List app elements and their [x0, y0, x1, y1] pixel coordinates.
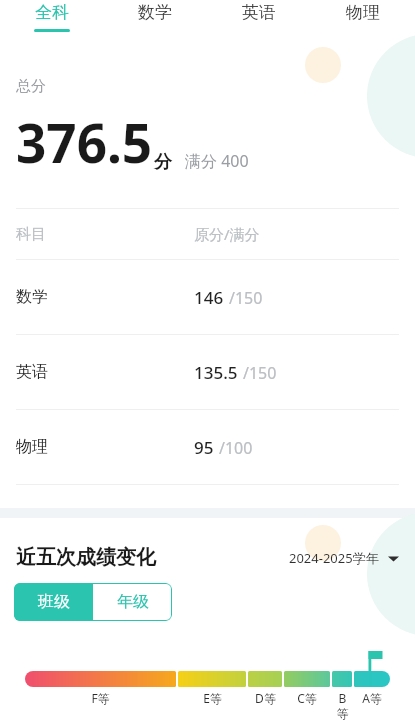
staticText: A等 — [362, 690, 382, 706]
button[interactable]: 物理 — [16, 410, 399, 484]
button[interactable]: 英语 — [16, 335, 399, 409]
button[interactable]: 班级 — [14, 583, 93, 621]
staticText: /150 — [243, 362, 277, 384]
staticText: C等 — [297, 690, 317, 706]
staticText: 数学 — [16, 287, 48, 307]
staticText: F等 — [91, 690, 110, 706]
staticText: 班级 — [38, 592, 70, 612]
staticText: 科目 — [16, 225, 46, 244]
button[interactable]: 选择学年 — [289, 549, 399, 567]
staticText: /100 — [219, 437, 253, 459]
staticText: E等 — [203, 690, 222, 706]
staticText: 近五次成绩变化 — [16, 545, 156, 570]
button[interactable]: 物理 — [311, 0, 415, 40]
staticText: 135.5 — [194, 361, 238, 384]
button[interactable]: 年级 — [93, 583, 172, 621]
staticText: 2024-2025学年 — [289, 549, 379, 567]
staticText: 物理 — [346, 2, 380, 23]
staticText: 英语 — [16, 362, 48, 382]
staticText: 满分 400 — [185, 150, 249, 172]
staticText: 376.5 — [16, 106, 153, 178]
staticText: D等 — [255, 690, 276, 706]
button[interactable]: 数学 — [16, 260, 399, 334]
staticText: 总分 — [16, 77, 46, 96]
staticText: 146 — [194, 286, 224, 309]
staticText: 物理 — [16, 437, 48, 457]
staticText: 英语 — [242, 2, 276, 23]
staticText: 原分/满分 — [194, 224, 260, 244]
staticText: /150 — [229, 287, 263, 309]
staticText: 分 — [154, 151, 172, 174]
button[interactable]: 英语 — [207, 0, 311, 40]
staticText: B等 — [335, 690, 350, 722]
staticText: 数学 — [138, 2, 172, 23]
staticText: 全科 — [35, 2, 69, 23]
staticText: 年级 — [117, 592, 149, 612]
button[interactable]: 数学 — [103, 0, 207, 40]
button[interactable]: 全科 — [0, 0, 103, 40]
staticText: 95 — [194, 436, 214, 459]
